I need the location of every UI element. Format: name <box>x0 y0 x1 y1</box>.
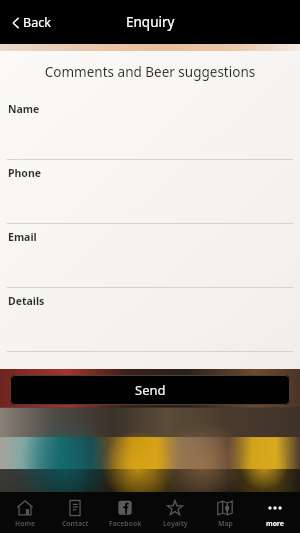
staticText: Facebook <box>109 519 142 528</box>
staticText: Email <box>8 230 37 244</box>
button[interactable]: Map <box>200 492 250 533</box>
button[interactable]: Loyalty <box>150 492 200 533</box>
staticText: Home <box>15 519 36 528</box>
button[interactable]: Name <box>0 96 300 160</box>
staticText: Name <box>8 102 40 116</box>
button[interactable]: Phone <box>0 160 300 224</box>
staticText: Back <box>23 14 51 31</box>
button[interactable]: Email <box>0 224 300 288</box>
button[interactable]: Home <box>0 492 50 533</box>
button[interactable]: Contact <box>50 492 100 533</box>
button[interactable]: Back <box>8 10 55 35</box>
staticText: Details <box>8 294 45 308</box>
staticText: Enquiry <box>126 13 175 31</box>
staticText: Comments and Beer suggestions <box>0 63 300 81</box>
staticText: Loyalty <box>163 519 188 528</box>
button[interactable]: Send <box>10 375 290 405</box>
staticText: Send <box>135 381 166 399</box>
button[interactable]: more <box>250 492 300 533</box>
button[interactable]: Details <box>0 288 300 352</box>
button[interactable]: Facebook <box>100 492 150 533</box>
staticText: Phone <box>8 166 42 180</box>
staticText: Map <box>218 519 233 528</box>
staticText: more <box>266 519 284 528</box>
staticText: Contact <box>62 519 89 528</box>
